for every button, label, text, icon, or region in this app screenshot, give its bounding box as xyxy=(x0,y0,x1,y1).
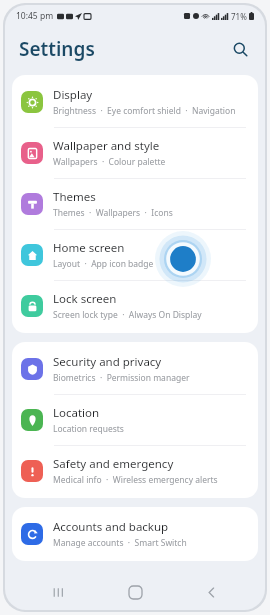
button[interactable]: Safety and emergency xyxy=(12,446,258,496)
staticText: Themes xyxy=(53,189,96,205)
staticText: Display xyxy=(53,87,93,103)
staticText: Location requests xyxy=(53,423,124,435)
button[interactable]: Wallpaper and style xyxy=(12,128,258,178)
button[interactable]: Accounts and backup xyxy=(12,509,258,559)
staticText: Biometrics · Permission manager xyxy=(53,372,190,384)
button[interactable]: Lock screen xyxy=(12,281,258,331)
staticText: Wallpaper and style xyxy=(53,138,160,154)
staticText: Layout · App icon badge xyxy=(53,258,154,270)
button[interactable]: Recent apps xyxy=(37,574,81,610)
button[interactable]: Security and privacy xyxy=(12,344,258,394)
staticText: Wallpapers · Colour palette xyxy=(53,156,166,168)
staticText: Settings xyxy=(19,36,95,62)
button[interactable]: Location xyxy=(12,395,258,445)
staticText: Security and privacy xyxy=(53,354,162,370)
staticText: Home screen xyxy=(53,240,125,256)
button[interactable]: Display xyxy=(12,77,258,127)
staticText: Safety and emergency xyxy=(53,456,174,472)
staticText: 10:45 pm xyxy=(16,10,54,22)
staticText: Screen lock type · Always On Display xyxy=(53,309,202,321)
staticText: Medical info · Wireless emergency alerts xyxy=(53,474,218,486)
staticText: Location xyxy=(53,405,100,421)
staticText: 71% xyxy=(231,11,247,22)
button[interactable]: Search xyxy=(225,34,255,64)
staticText: Brightness · Eye comfort shield · Naviga… xyxy=(53,105,249,117)
button[interactable]: Home screen xyxy=(12,230,258,280)
button[interactable]: Themes xyxy=(12,179,258,229)
button[interactable]: Home xyxy=(113,574,157,610)
button[interactable]: Back xyxy=(189,574,233,610)
staticText: Themes · Wallpapers · Icons xyxy=(53,207,173,219)
staticText: Manage accounts · Smart Switch xyxy=(53,537,187,549)
staticText: Accounts and backup xyxy=(53,519,169,535)
staticText: Lock screen xyxy=(53,291,117,307)
